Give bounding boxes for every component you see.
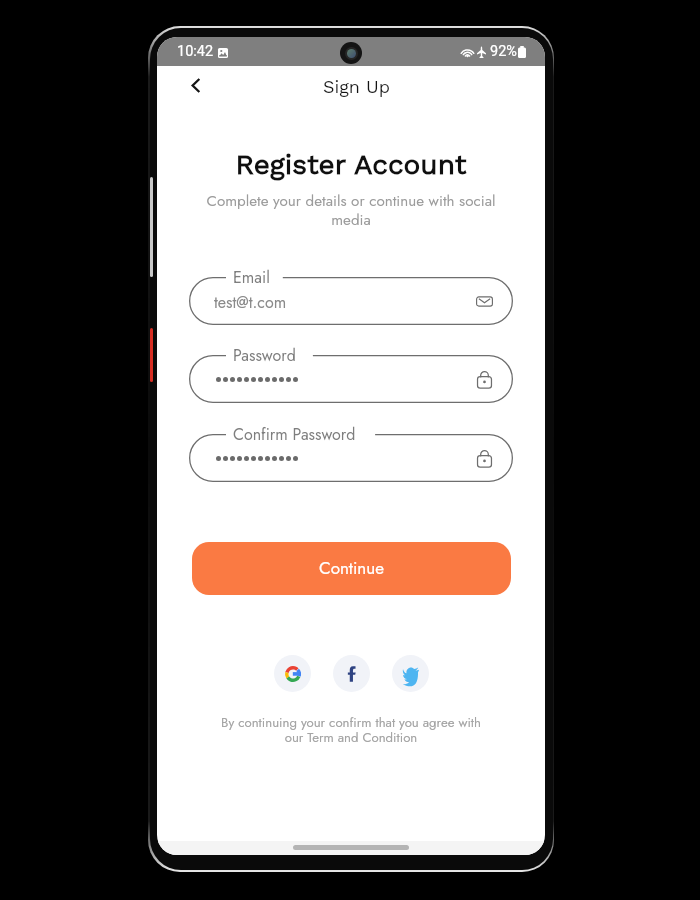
button[interactable]: Sign up with Google: [274, 655, 311, 692]
button[interactable]: Continue: [192, 542, 511, 595]
button[interactable]: Sign up with Facebook: [333, 655, 370, 692]
staticText: 10:42: [177, 43, 214, 60]
staticText: 92%: [490, 43, 517, 60]
staticText: Sign Up: [323, 76, 391, 97]
staticText: Continue: [319, 556, 384, 581]
staticText: test@t.com: [214, 291, 287, 314]
staticText: Password: [233, 344, 296, 367]
button[interactable]: Email: [189, 277, 513, 325]
staticText: Confirm Password: [233, 423, 356, 446]
button[interactable]: Sign up with Twitter: [392, 655, 429, 692]
button[interactable]: Password: [189, 355, 513, 403]
staticText: By continuing your confirm that you agre…: [217, 713, 485, 747]
button[interactable]: Back: [182, 71, 210, 99]
staticText: Email: [233, 266, 270, 289]
staticText: Register Account: [157, 148, 545, 181]
staticText: Complete your details or continue with s…: [201, 190, 501, 231]
button[interactable]: Confirm Password: [189, 434, 513, 482]
